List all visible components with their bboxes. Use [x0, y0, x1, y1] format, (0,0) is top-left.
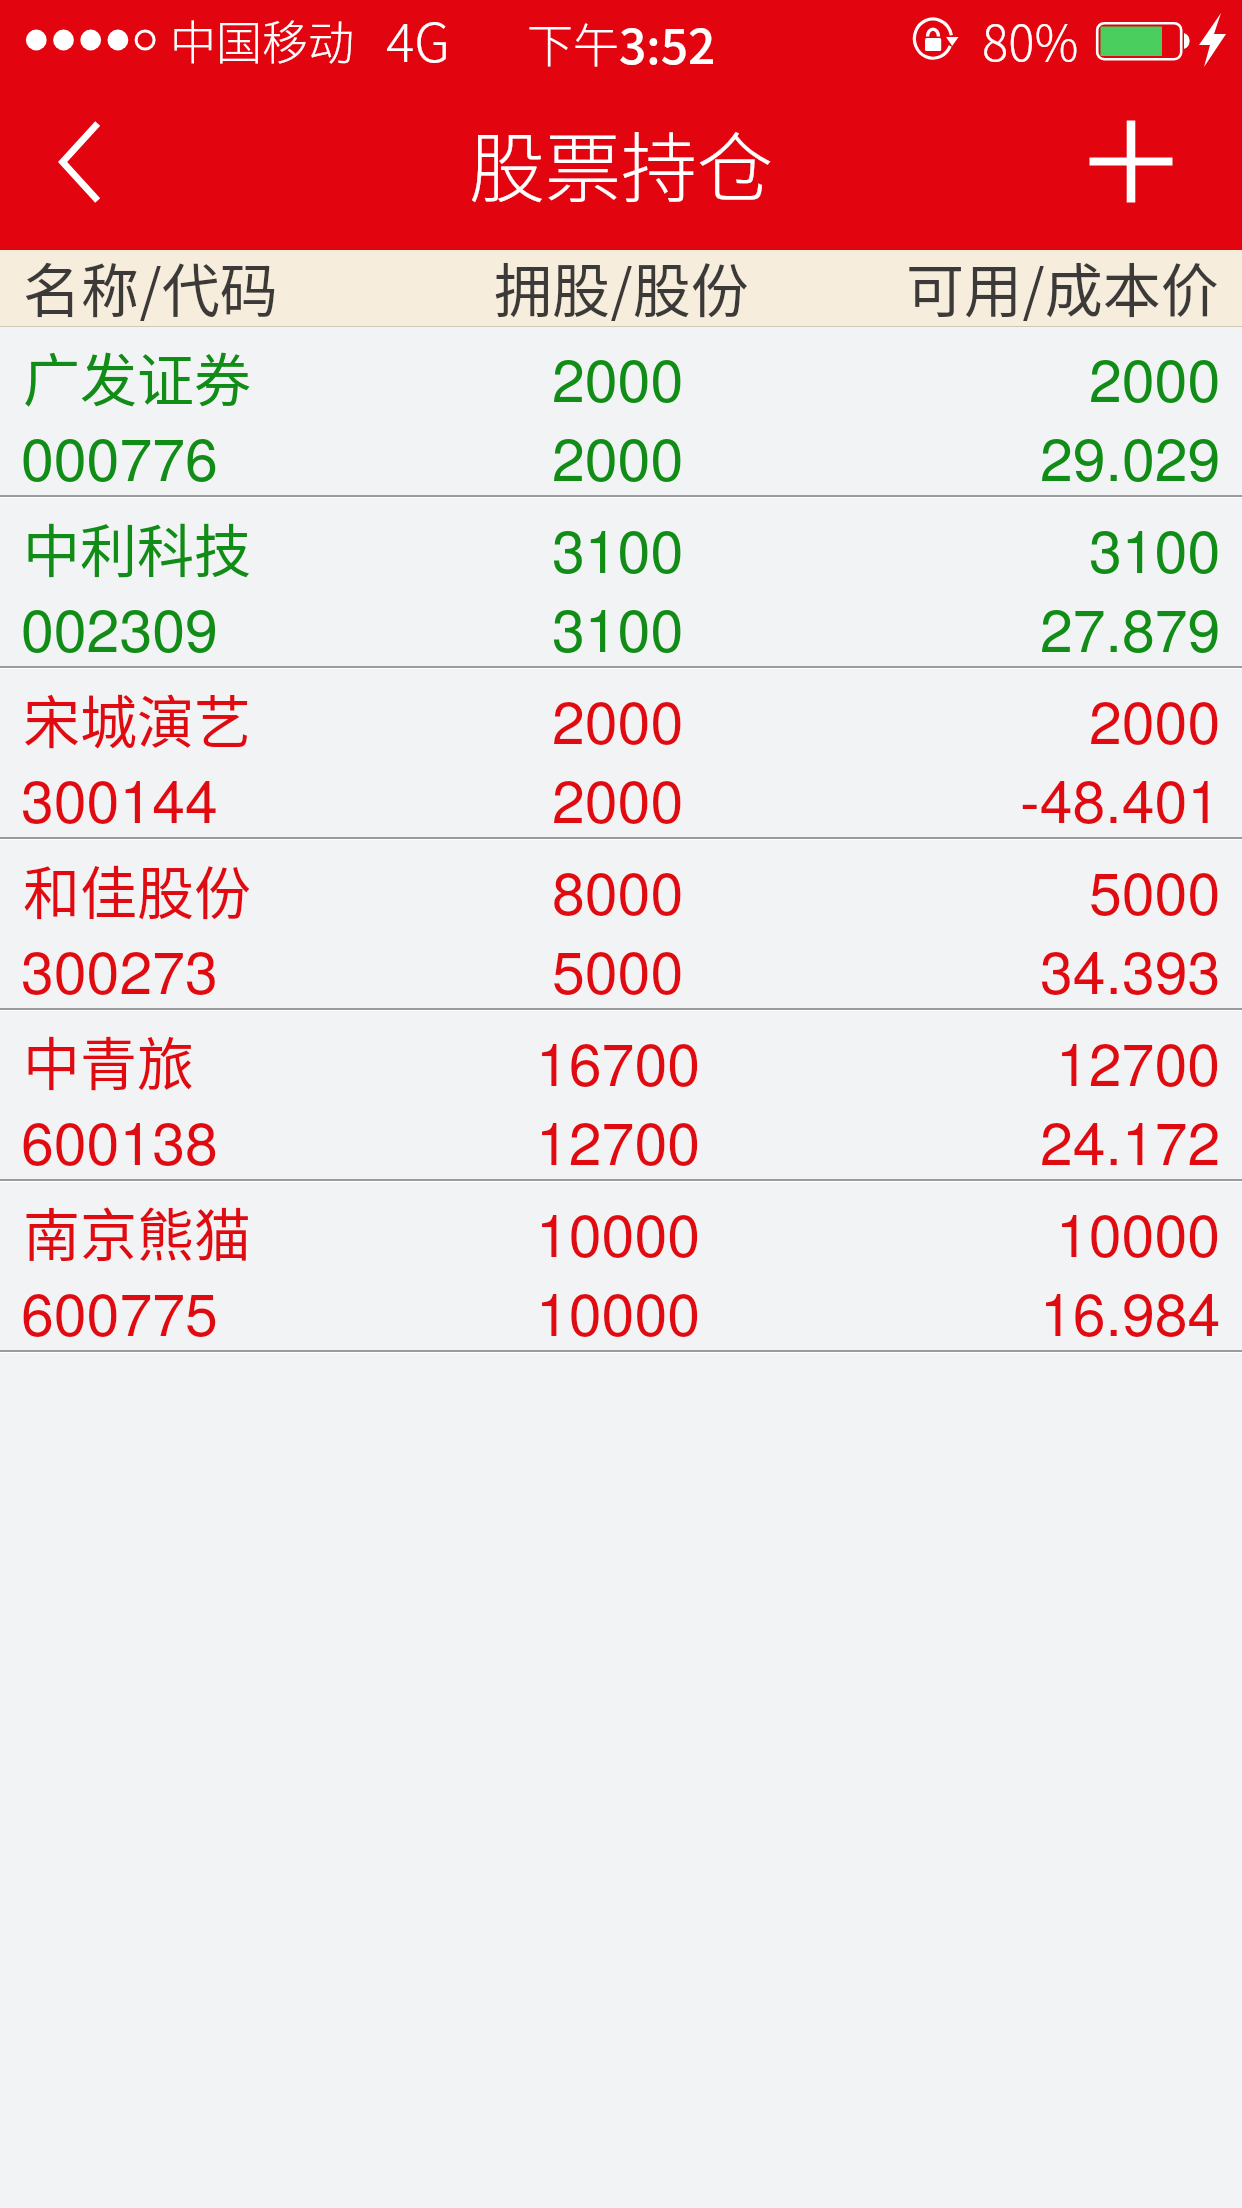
staticText: 5000	[1089, 847, 1221, 931]
staticText: 宋城演艺	[23, 677, 251, 760]
staticText: 3100	[552, 505, 684, 589]
staticText: 名称/代码	[23, 245, 278, 321]
button[interactable]: 和佳股份	[0, 840, 1242, 1011]
button[interactable]: 宋城演艺	[0, 669, 1242, 840]
staticText: 80%	[982, 4, 1079, 75]
staticText: 300144	[21, 755, 218, 839]
staticText: 24.172	[1040, 1097, 1221, 1181]
staticText: 8000	[552, 847, 684, 931]
staticText: 10000	[536, 1189, 701, 1273]
staticText: 2000	[552, 413, 684, 497]
button[interactable]: 中利科技	[0, 498, 1242, 669]
staticText: -48.401	[1020, 755, 1221, 839]
button[interactable]: 中青旅	[0, 1011, 1242, 1182]
staticText: 南京熊猫	[23, 1190, 251, 1273]
staticText: 3:52	[619, 8, 716, 78]
staticText: 10000	[1056, 1189, 1221, 1273]
staticText: 和佳股份	[23, 848, 251, 931]
button[interactable]: Back	[0, 80, 170, 250]
staticText: 600775	[21, 1268, 218, 1352]
staticText: 5000	[552, 926, 684, 1010]
staticText: 600138	[21, 1097, 218, 1181]
staticText: 300273	[21, 926, 218, 1010]
staticText: 16.984	[1040, 1268, 1221, 1352]
button[interactable]: Add	[1072, 80, 1242, 250]
staticText: 2000	[552, 676, 684, 760]
staticText: 拥股/股份	[494, 245, 749, 321]
staticText: 股票持仓	[469, 108, 773, 218]
staticText: 16700	[536, 1018, 701, 1102]
staticText: 中青旅	[23, 1019, 194, 1102]
staticText: 2000	[1089, 334, 1221, 418]
staticText: 2000	[552, 334, 684, 418]
staticText: 中国移动	[170, 6, 354, 73]
button[interactable]: 南京熊猫	[0, 1182, 1242, 1353]
staticText: 3100	[552, 584, 684, 668]
staticText: 29.029	[1040, 413, 1221, 497]
staticText: 可用/成本价	[906, 245, 1219, 321]
staticText: 002309	[21, 584, 218, 668]
staticText: 2000	[552, 755, 684, 839]
staticText: 下午	[527, 9, 619, 76]
button[interactable]: 广发证券	[0, 327, 1242, 498]
staticText: 12700	[1056, 1018, 1221, 1102]
staticText: 27.879	[1040, 584, 1221, 668]
staticText: 34.393	[1040, 926, 1221, 1010]
staticText: 000776	[21, 413, 218, 497]
staticText: 3100	[1089, 505, 1221, 589]
staticText: 2000	[1089, 676, 1221, 760]
staticText: 中利科技	[23, 506, 251, 589]
staticText: 4G	[386, 1, 451, 78]
staticText: 广发证券	[23, 335, 251, 418]
staticText: 12700	[536, 1097, 701, 1181]
staticText: 10000	[536, 1268, 701, 1352]
